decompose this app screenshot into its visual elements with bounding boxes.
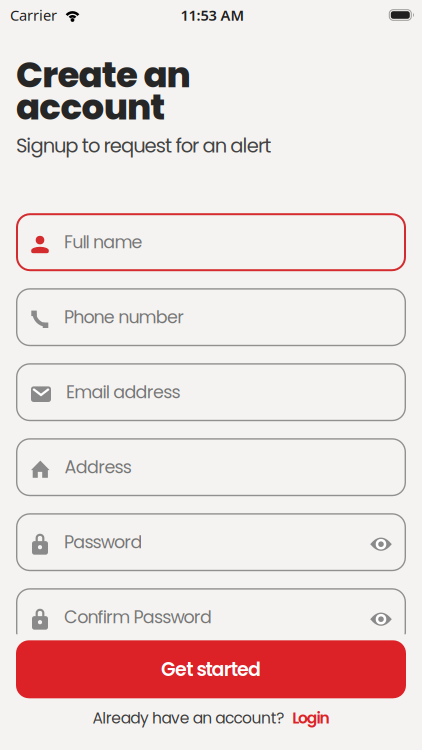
button[interactable]: Email address	[16, 363, 406, 421]
button[interactable]: Address	[16, 438, 406, 496]
staticText: Get started	[161, 656, 261, 683]
staticText: Signup to request for an alert	[16, 132, 271, 159]
staticText: Address	[65, 455, 132, 479]
staticText: Password	[64, 530, 142, 554]
button[interactable]: Show password	[370, 608, 406, 626]
staticText: Create an	[16, 50, 191, 100]
staticText: Confirm Password	[64, 605, 212, 629]
staticText: Login	[292, 707, 329, 729]
button[interactable]: Login	[292, 707, 329, 729]
button[interactable]: Confirm Password	[16, 588, 406, 646]
button[interactable]: Full name	[16, 213, 406, 271]
staticText: account	[16, 82, 165, 132]
staticText: Carrier	[10, 5, 57, 25]
button[interactable]: Phone number	[16, 288, 406, 346]
staticText: 11:53 AM	[180, 5, 244, 25]
staticText: Phone number	[64, 305, 184, 329]
button[interactable]: Password	[16, 513, 406, 571]
staticText: Full name	[64, 230, 143, 254]
button[interactable]: Get started	[16, 640, 406, 698]
staticText: Already have an account?	[93, 707, 284, 729]
staticText: Email address	[66, 380, 180, 404]
button[interactable]: Show password	[370, 533, 406, 551]
